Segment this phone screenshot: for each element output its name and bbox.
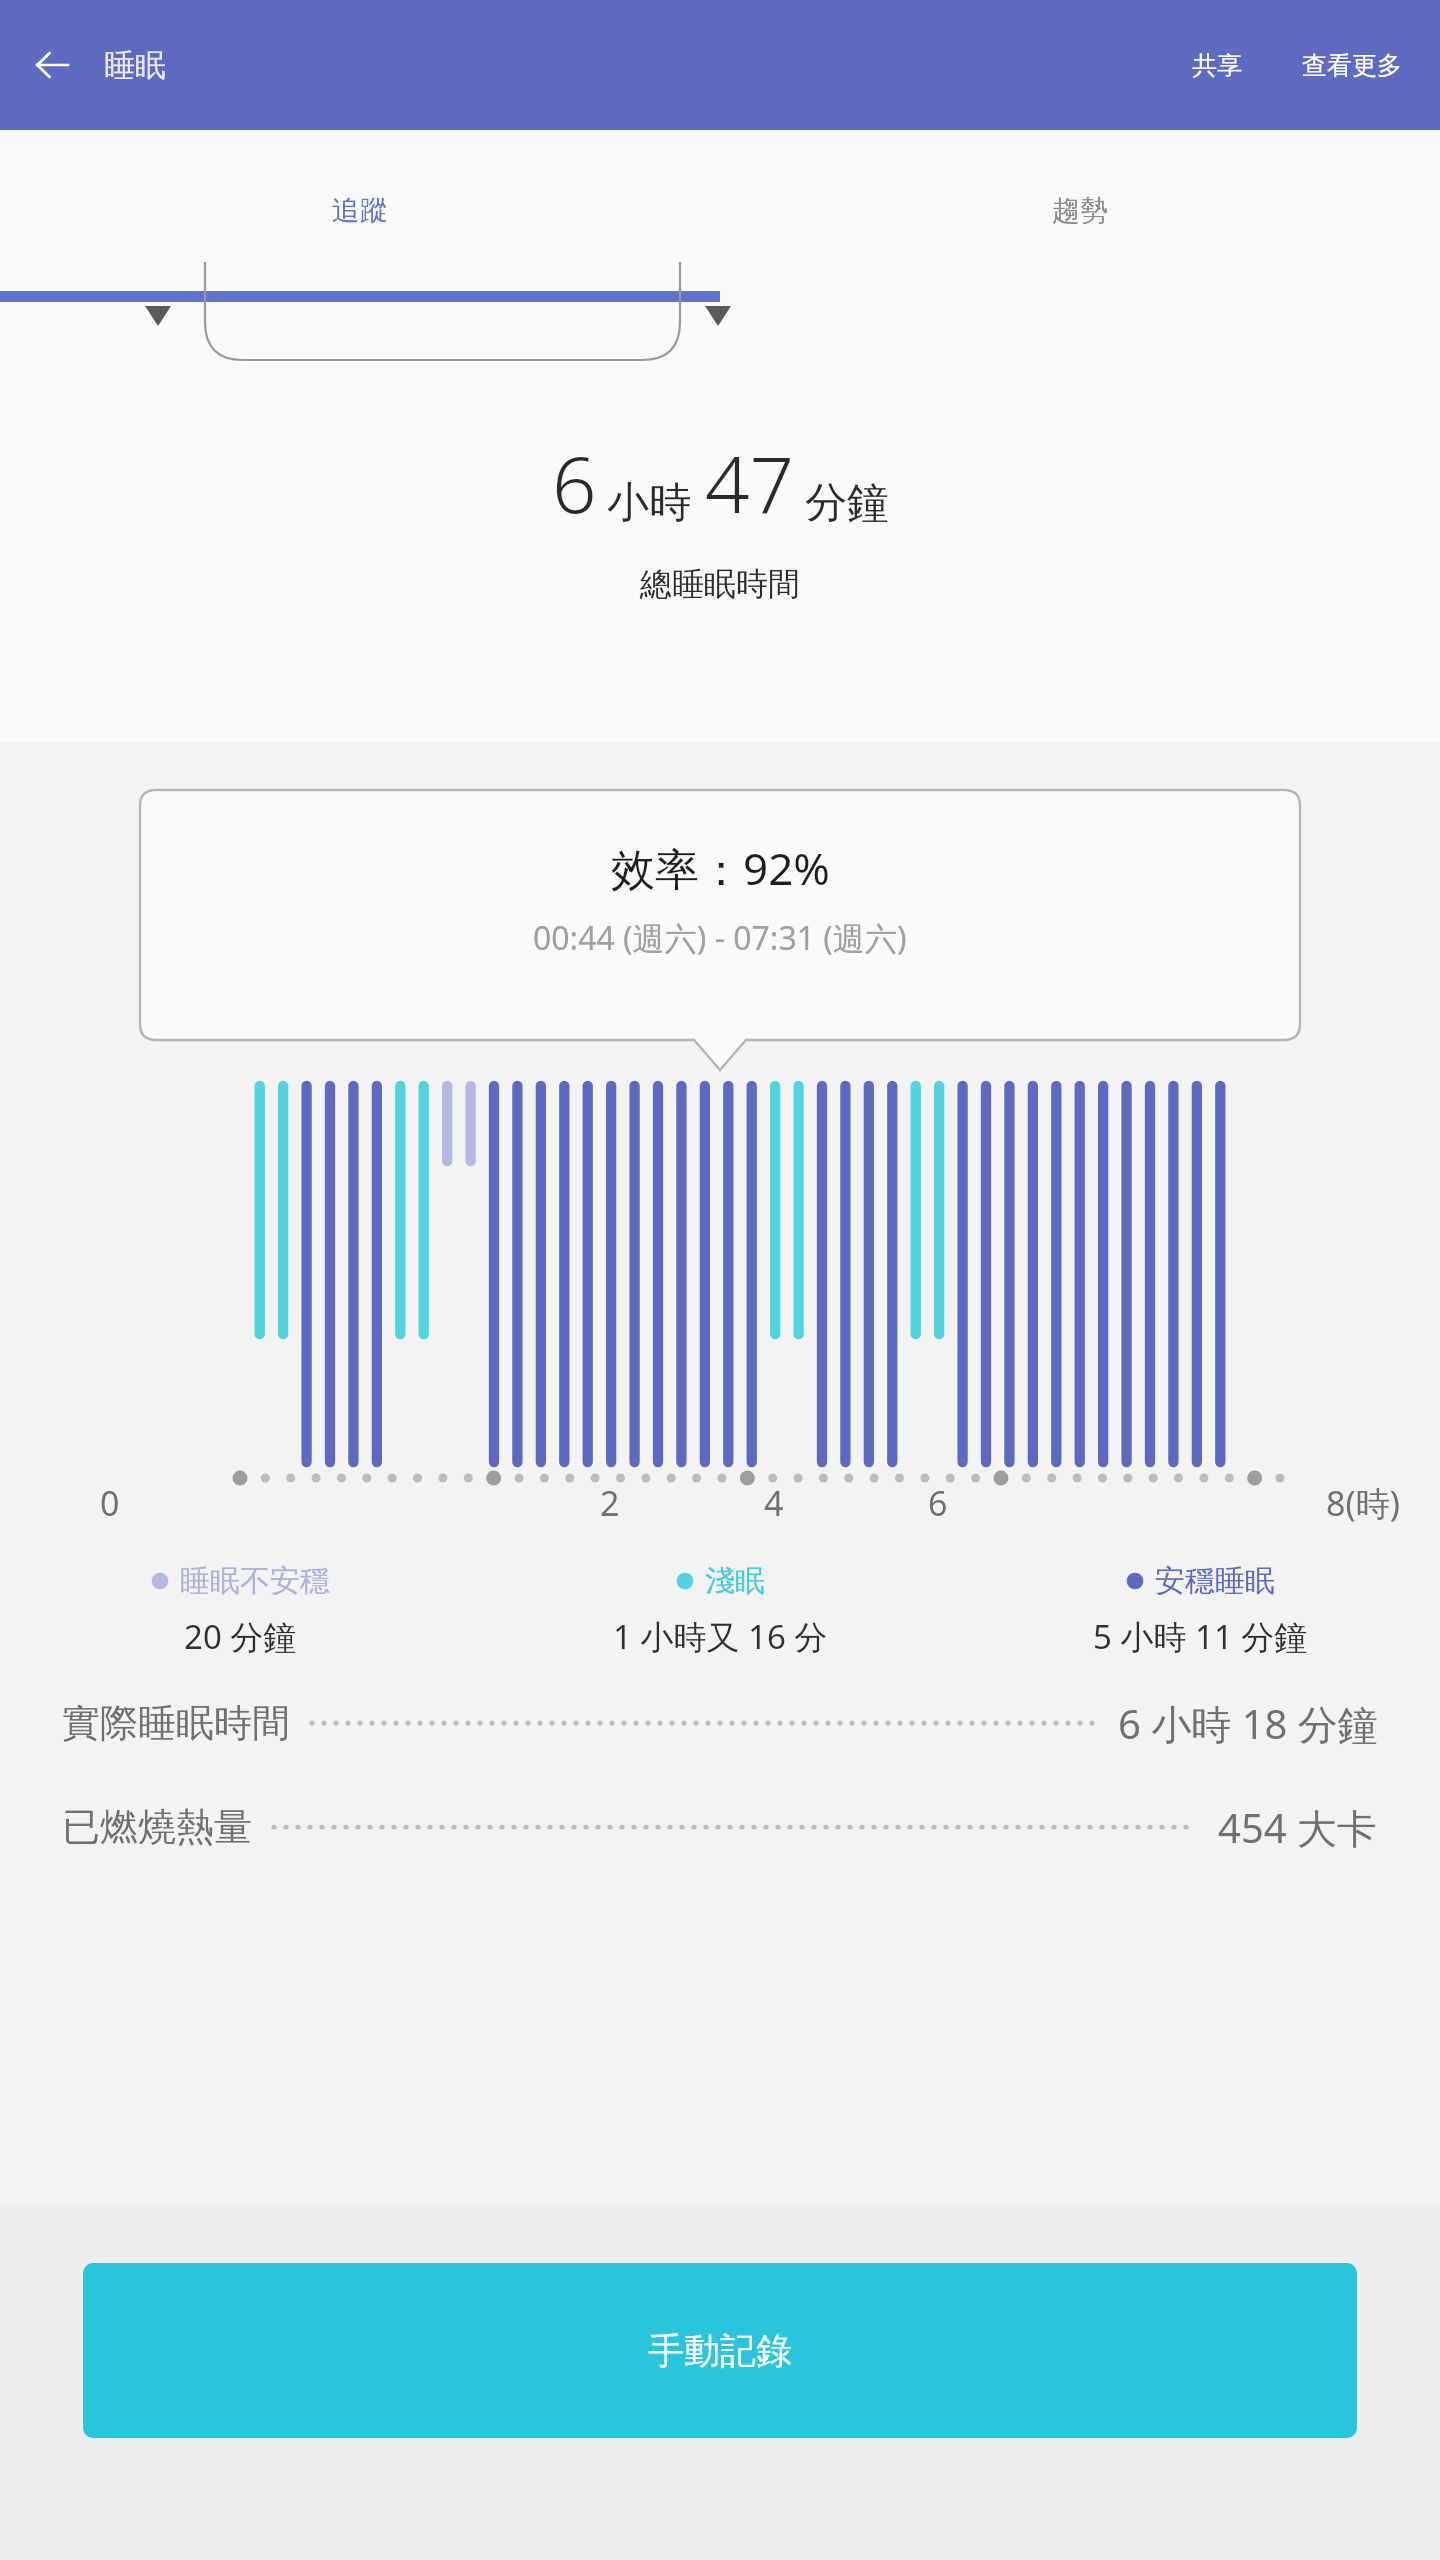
staticText: 6 — [552, 430, 597, 536]
staticText: 2 — [600, 1480, 620, 1526]
staticText: 1 小時又 16 分 — [613, 1614, 828, 1659]
staticText: 00:44 (週六) - 07:31 (週六) — [533, 916, 907, 960]
staticText: 已燃燒熱量 — [62, 1803, 252, 1851]
button[interactable]: 淺眠 — [480, 1562, 960, 1659]
staticText: 睡眠不安穩 — [180, 1562, 330, 1600]
staticText: 小時 — [607, 477, 691, 530]
button[interactable]: 已燃燒熱量 — [62, 1791, 1378, 1863]
staticText: 睡眠 — [104, 46, 166, 85]
staticText: 6 小時 18 分鐘 — [1118, 1696, 1378, 1751]
button[interactable]: 追蹤 — [0, 130, 720, 302]
staticText: 0 — [100, 1480, 120, 1526]
button[interactable]: 睡眠不安穩 — [0, 1562, 480, 1659]
staticText: 實際睡眠時間 — [62, 1699, 290, 1747]
staticText: 47 — [705, 430, 795, 536]
staticText: 5 小時 11 分鐘 — [1093, 1614, 1308, 1659]
button[interactable]: 實際睡眠時間 — [62, 1687, 1378, 1759]
button[interactable]: Back — [22, 35, 82, 95]
button[interactable]: 安穩睡眠 — [960, 1562, 1440, 1659]
staticText: 6 — [928, 1480, 948, 1526]
staticText: 20 分鐘 — [184, 1614, 297, 1659]
button[interactable]: 手動記錄 — [83, 2263, 1357, 2438]
staticText: 趨勢 — [1052, 193, 1108, 228]
staticText: 4 — [764, 1480, 784, 1526]
button[interactable]: 共享 — [1182, 36, 1252, 95]
staticText: 總睡眠時間 — [640, 564, 800, 604]
staticText: 淺眠 — [705, 1562, 765, 1600]
staticText: 手動記錄 — [648, 2328, 792, 2373]
staticText: 效率：92% — [611, 838, 830, 898]
button[interactable]: 趨勢 — [720, 130, 1440, 302]
staticText: 共享 — [1192, 50, 1242, 81]
staticText: 查看更多 — [1302, 50, 1402, 81]
staticText: 分鐘 — [805, 477, 889, 530]
button[interactable]: 查看更多 — [1292, 36, 1412, 95]
staticText: 8(時) — [1326, 1480, 1400, 1526]
staticText: 454 大卡 — [1218, 1800, 1378, 1855]
staticText: 追蹤 — [332, 193, 388, 228]
staticText: 安穩睡眠 — [1155, 1562, 1275, 1600]
